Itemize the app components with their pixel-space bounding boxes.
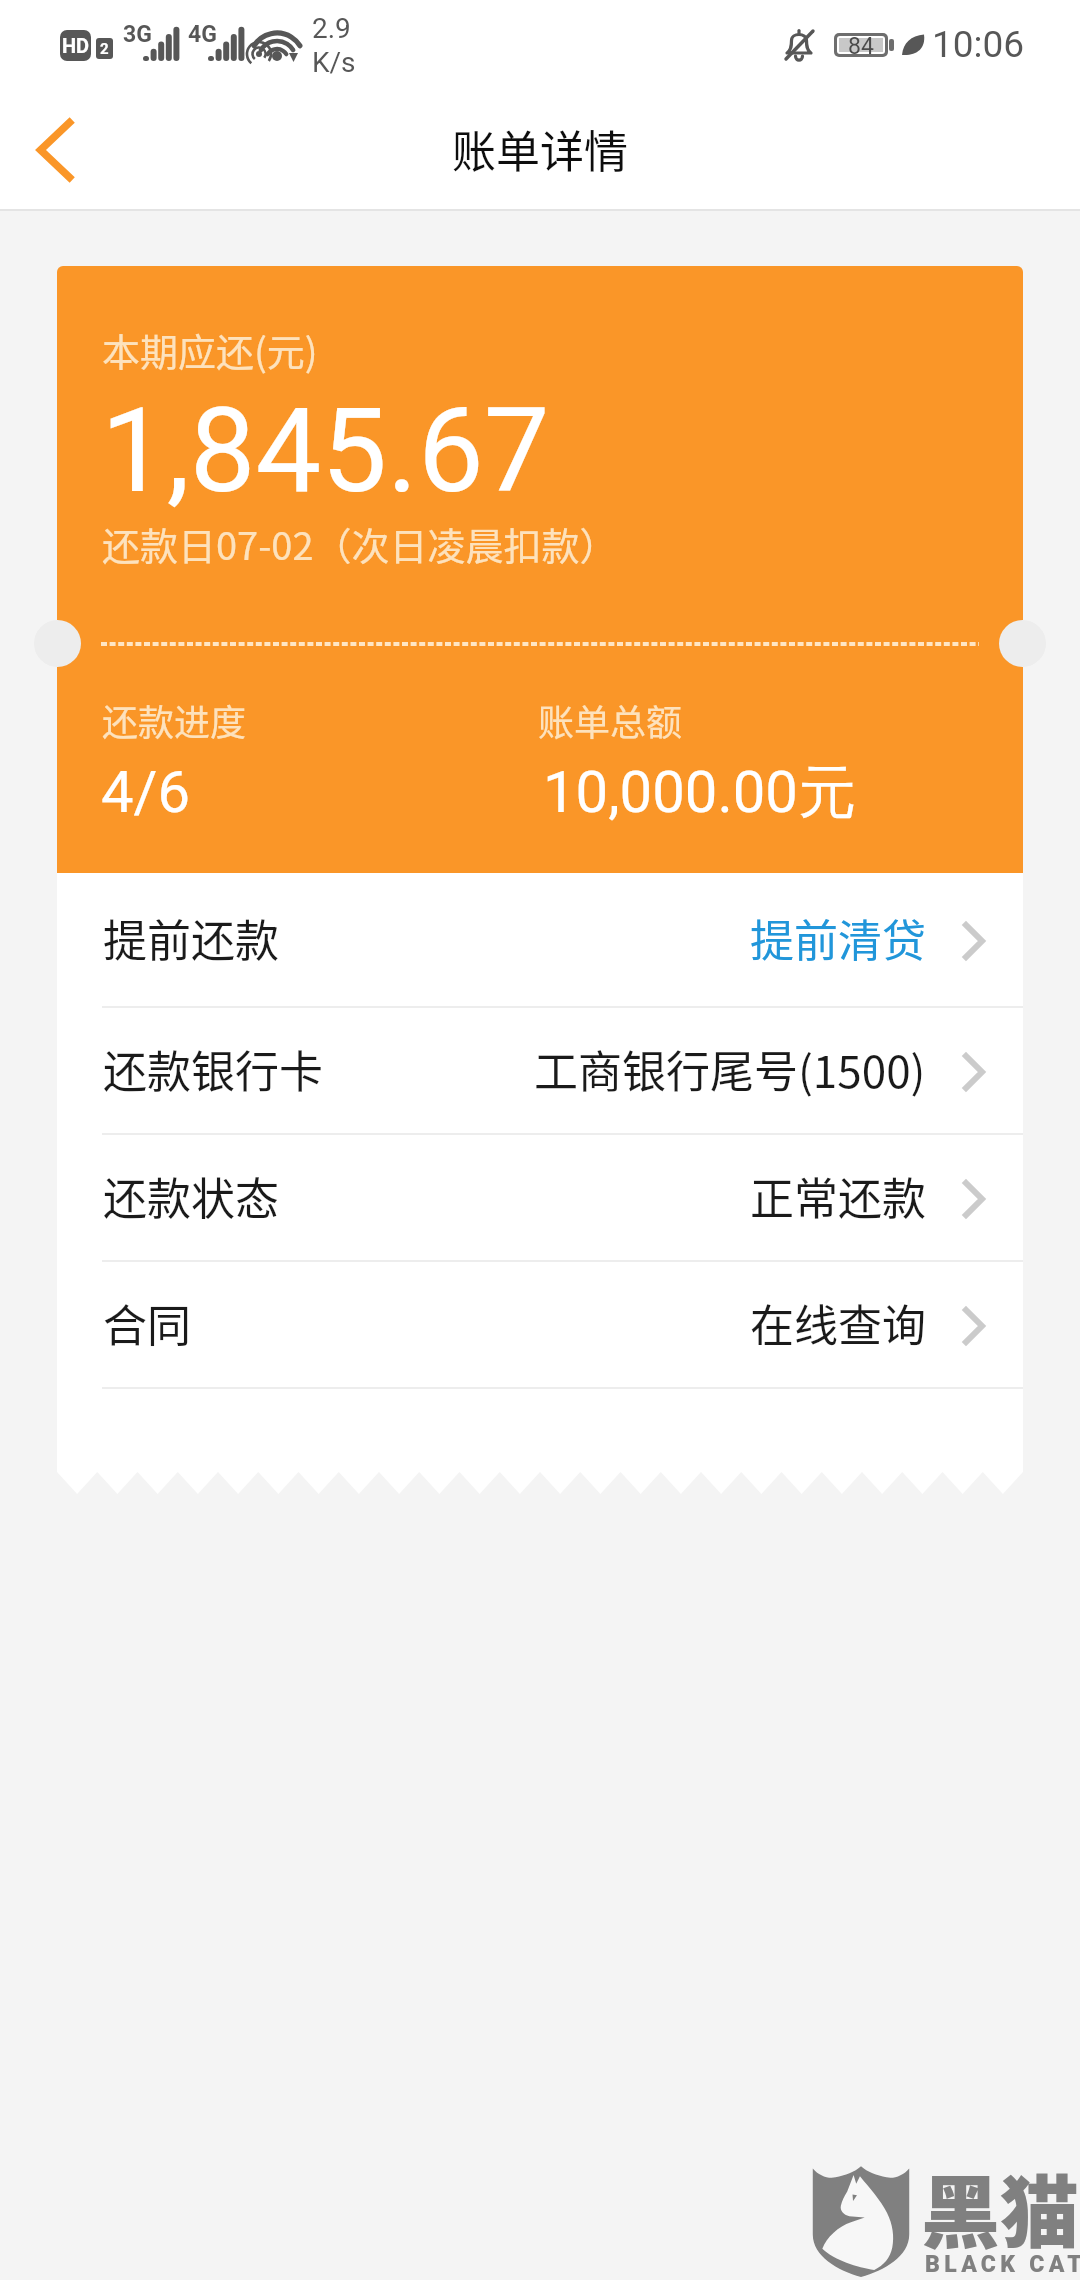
button[interactable]: 合同 (57, 1262, 1023, 1389)
staticText: 工商银行尾号(1500) (534, 1037, 926, 1101)
staticText: HD (62, 34, 90, 57)
staticText: 10,000.00元 (543, 756, 856, 829)
staticText: 1,845.67 (101, 382, 550, 519)
staticText: 4G (188, 21, 217, 48)
staticText: 本期应还(元) (102, 322, 318, 377)
staticText: 2.9 K/s (312, 12, 356, 79)
button[interactable]: 还款状态 (57, 1135, 1023, 1262)
staticText: 84 (848, 33, 874, 57)
staticText: 黑猫 (921, 2150, 1079, 2264)
staticText: 合同 (103, 1291, 191, 1355)
staticText: BLACK CAT (925, 2251, 1080, 2278)
staticText: 还款状态 (103, 1164, 279, 1228)
staticText: 账单详情 (452, 117, 628, 181)
staticText: 还款银行卡 (103, 1037, 323, 1101)
staticText: 提前清贷 (750, 906, 926, 970)
staticText: 10:06 (932, 23, 1025, 66)
staticText: 在线查询 (750, 1291, 926, 1355)
staticText: 账单总额 (538, 694, 683, 746)
button[interactable]: Back (0, 93, 110, 211)
staticText: 正常还款 (750, 1164, 926, 1228)
staticText: 还款日07-02（次日凌晨扣款） (102, 516, 618, 571)
staticText: 4/6 (101, 758, 191, 826)
staticText: 2 (100, 40, 109, 58)
staticText: 提前还款 (103, 906, 279, 970)
button[interactable]: 提前还款 (57, 873, 1023, 1008)
staticText: 3G (123, 21, 152, 48)
staticText: 还款进度 (102, 694, 247, 746)
button[interactable]: 还款银行卡 (57, 1008, 1023, 1135)
